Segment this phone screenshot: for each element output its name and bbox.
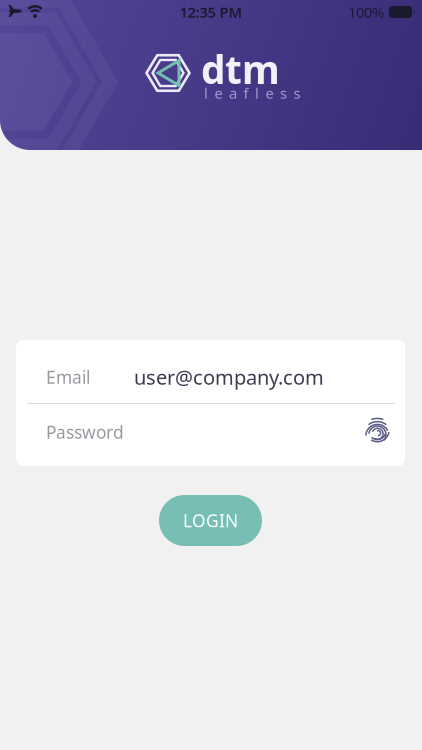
staticText: leafless	[204, 83, 300, 103]
staticText: Email	[46, 365, 90, 388]
staticText: dtm	[201, 43, 280, 95]
staticText: 100%	[348, 2, 384, 22]
button[interactable]: Password	[16, 404, 405, 466]
button[interactable]: Email	[16, 340, 405, 403]
staticText: Password	[46, 420, 124, 443]
staticText: user@company.com	[134, 364, 324, 390]
button[interactable]: LOGIN	[159, 495, 262, 546]
staticText: 12:35 PM	[179, 2, 242, 22]
staticText: LOGIN	[183, 509, 238, 532]
